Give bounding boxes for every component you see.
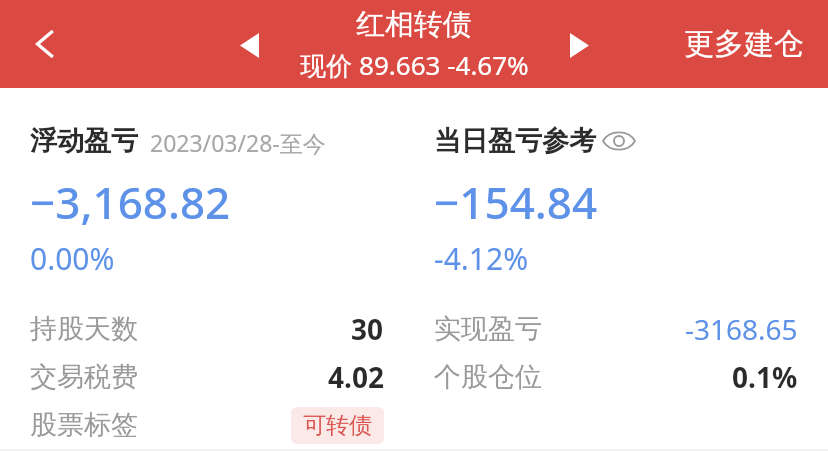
staticText: 交易税费 [30, 360, 138, 394]
staticText: 当日盈亏参考 [434, 124, 596, 158]
staticText: 30 [351, 310, 384, 348]
button[interactable]: Next stock [557, 23, 601, 67]
button[interactable]: Back [18, 17, 72, 71]
staticText: 4.02 [328, 358, 384, 396]
staticText: 现价 89.663 -4.67% [300, 47, 529, 83]
button[interactable]: 实现盈亏 [434, 305, 798, 353]
staticText: 个股仓位 [434, 360, 542, 394]
button[interactable]: 当日盈亏参考 [434, 124, 636, 158]
staticText: 股票标签 [30, 408, 138, 442]
button[interactable]: 交易税费 [30, 353, 384, 401]
button[interactable]: Previous stock [227, 23, 271, 67]
staticText: 可转债 [303, 411, 372, 440]
staticText: 0.1% [732, 358, 798, 396]
staticText: 0.00% [30, 238, 115, 279]
staticText: 实现盈亏 [434, 312, 542, 346]
staticText: -4.12% [434, 238, 529, 279]
staticText: −3,168.82 [30, 172, 231, 232]
staticText: −154.84 [434, 172, 598, 232]
staticText: 浮动盈亏 [30, 124, 138, 158]
button[interactable]: 持股天数 [30, 305, 384, 353]
staticText: 2023/03/28-至今 [150, 127, 326, 158]
other: Toggle visibility [602, 129, 636, 153]
staticText: 红相转债 [356, 6, 472, 43]
button[interactable]: 股票标签 [30, 401, 384, 449]
button[interactable]: 更多建仓 [660, 11, 828, 77]
button[interactable]: 个股仓位 [434, 353, 798, 401]
staticText: -3168.65 [685, 310, 798, 348]
staticText: 更多建仓 [684, 25, 804, 63]
staticText: 持股天数 [30, 312, 138, 346]
